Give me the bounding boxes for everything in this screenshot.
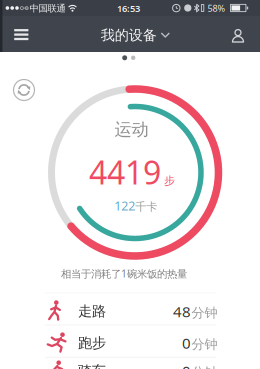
staticText: 骑车	[78, 362, 106, 369]
staticText: 48	[173, 301, 191, 321]
staticText: 分钟	[191, 364, 217, 369]
button[interactable]: 我的设备	[101, 26, 170, 44]
staticText: 我的设备	[101, 26, 157, 44]
staticText: 0	[182, 361, 191, 369]
staticText: 58%	[207, 2, 225, 14]
button[interactable]: 用户	[223, 21, 253, 51]
staticText: 0	[182, 333, 191, 353]
button[interactable]: 菜单	[7, 19, 35, 49]
staticText: 16:53	[117, 2, 140, 15]
button[interactable]: 跑步	[0, 327, 260, 359]
staticText: 步	[164, 174, 175, 188]
staticText: 分钟	[191, 336, 217, 353]
staticText: 中国联通	[29, 2, 65, 14]
staticText: 运动	[115, 119, 149, 140]
staticText: 4419	[89, 150, 161, 194]
button[interactable]: 同步	[11, 77, 37, 103]
staticText: 跑步	[78, 334, 106, 352]
staticText: 走路	[78, 302, 106, 320]
staticText: 千卡	[135, 200, 157, 214]
staticText: 122	[114, 197, 135, 214]
staticText: 相当于消耗了1碗米饭的热量	[61, 266, 187, 281]
staticText: 分钟	[191, 305, 217, 321]
button[interactable]: 走路	[0, 295, 260, 327]
button[interactable]: 骑车	[0, 355, 260, 369]
